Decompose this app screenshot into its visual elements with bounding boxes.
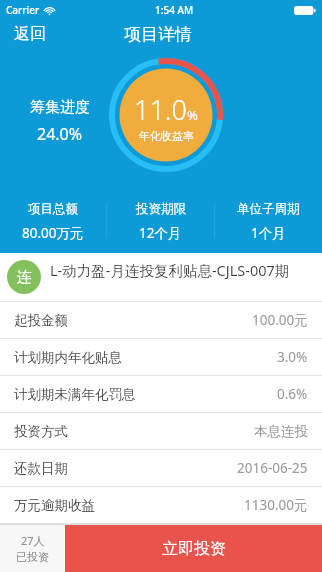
- button[interactable]: 立即投资: [65, 525, 322, 572]
- staticText: 0.6%: [277, 385, 308, 403]
- button[interactable]: 计划期未满年化罚息: [0, 376, 322, 412]
- staticText: 1130.00元: [244, 496, 308, 514]
- staticText: 本息连投: [254, 423, 308, 440]
- staticText: L-动力盈-月连投复利贴息-CJLS-007期: [50, 260, 310, 280]
- staticText: 2016-06-25: [237, 459, 308, 477]
- staticText: 年化收益率: [139, 129, 194, 143]
- staticText: 项目总额: [28, 201, 78, 217]
- staticText: 计划期未满年化罚息: [14, 386, 136, 403]
- staticText: 万元逾期收益: [14, 497, 95, 514]
- staticText: 12个月: [139, 224, 182, 242]
- button[interactable]: 还款日期: [0, 450, 322, 486]
- staticText: 单位子周期: [237, 201, 300, 217]
- staticText: %: [187, 106, 198, 124]
- staticText: 投资期限: [136, 201, 186, 217]
- staticText: 已投资: [16, 550, 49, 564]
- staticText: 1个月: [251, 224, 286, 242]
- staticText: 3.0%: [277, 348, 308, 366]
- staticText: 立即投资: [162, 539, 226, 559]
- staticText: 筹集进度: [30, 98, 90, 117]
- button[interactable]: 起投金额: [0, 302, 322, 338]
- staticText: 11.0: [134, 91, 187, 128]
- staticText: 计划期内年化贴息: [14, 349, 122, 366]
- staticText: 投资方式: [14, 423, 68, 440]
- other: Wi-Fi: [44, 6, 55, 15]
- staticText: 项目详情: [124, 24, 192, 45]
- button[interactable]: 计划期内年化贴息: [0, 339, 322, 375]
- staticText: 100.00元: [252, 311, 308, 329]
- staticText: 还款日期: [14, 460, 68, 477]
- staticText: 24.0%: [37, 123, 83, 145]
- staticText: 起投金额: [14, 312, 68, 329]
- staticText: 返回: [14, 24, 46, 44]
- staticText: 27人: [21, 533, 45, 548]
- staticText: 1:54 AM: [155, 3, 194, 17]
- button[interactable]: 连: [0, 253, 322, 301]
- staticText: 连: [17, 268, 32, 287]
- button[interactable]: 万元逾期收益: [0, 487, 322, 523]
- other: Battery: [294, 6, 316, 15]
- staticText: Carrier: [6, 3, 40, 17]
- button[interactable]: 投资方式: [0, 413, 322, 449]
- staticText: 80.00万元: [22, 224, 84, 242]
- button[interactable]: 返回: [0, 22, 56, 46]
